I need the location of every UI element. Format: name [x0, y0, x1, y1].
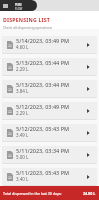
button[interactable]: 5/11/2023, 05:43 PM: [2, 168, 97, 185]
button[interactable]: 5/13/2023, 03:44 PM: [2, 80, 97, 97]
button[interactable]: 5/10/2023, 03:44 PM: [2, 190, 97, 200]
staticText: PURE: [15, 3, 22, 7]
button[interactable]: 5/12/2023, 05:43 PM: [2, 124, 97, 141]
staticText: 4.60 L: [16, 44, 29, 50]
button[interactable]: 5/13/2023, 05:44 PM: [2, 58, 97, 75]
button[interactable]: 5/14/2023, 03:49 PM: [2, 36, 97, 53]
staticText: 5/13/2023, 05:44 PM: [16, 59, 70, 66]
staticText: 5/13/2023, 03:44 PM: [16, 81, 70, 88]
button[interactable]: 5/11/2023, 03:34 PM: [2, 146, 97, 163]
staticText: 5/14/2023, 03:49 PM: [16, 37, 70, 44]
button[interactable]: Menu: [0, 0, 37, 11]
staticText: 3.49 L: [16, 132, 29, 138]
staticText: 24.80 L: [83, 191, 96, 196]
staticText: 5/12/2023, 05:43 PM: [16, 125, 70, 132]
button[interactable]: Total dispensed in the last 30 days:: [0, 186, 99, 200]
staticText: Total dispensed in the last 30 days:: [3, 191, 62, 196]
staticText: 5/11/2023, 03:34 PM: [16, 147, 70, 154]
staticText: 2.29 L: [16, 110, 29, 116]
staticText: Check all dispensing operations: [3, 25, 53, 29]
staticText: 5/10/2023, 03:44 PM: [16, 190, 70, 197]
button[interactable]: 5/12/2023, 03:49 PM: [2, 102, 97, 119]
staticText: FLOW: [15, 7, 23, 11]
staticText: 3.40 L: [16, 176, 29, 182]
staticText: 5/11/2023, 05:43 PM: [16, 169, 70, 176]
staticText: 3.84 L: [16, 88, 29, 94]
staticText: DISPENSING LIST: [3, 16, 50, 23]
staticText: 2.29 L: [16, 66, 29, 72]
staticText: 5/12/2023, 03:49 PM: [16, 103, 70, 110]
staticText: 5.00 L: [16, 154, 29, 160]
